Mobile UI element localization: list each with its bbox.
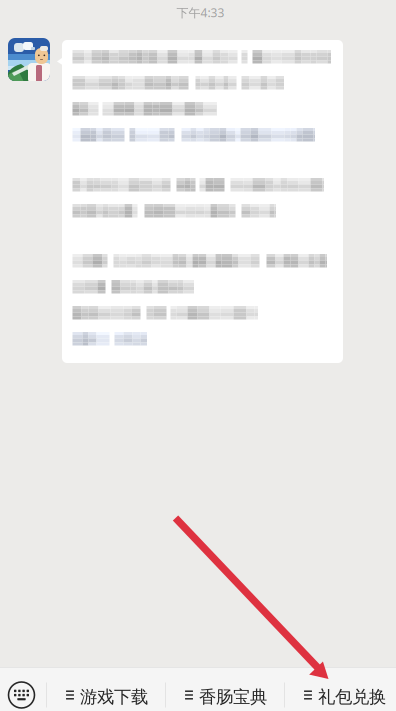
staticText: 游戏下载 — [80, 686, 148, 708]
button[interactable]: 香肠宝典 — [165, 667, 284, 711]
staticText: 下午4:33 — [176, 4, 224, 20]
button[interactable]: Keyboard — [0, 667, 46, 711]
staticText: 礼包兑换 — [318, 686, 386, 708]
button[interactable]: 礼包兑换 — [284, 667, 396, 711]
staticText: 香肠宝典 — [199, 686, 267, 708]
button[interactable]: 游戏下载 — [46, 667, 165, 711]
